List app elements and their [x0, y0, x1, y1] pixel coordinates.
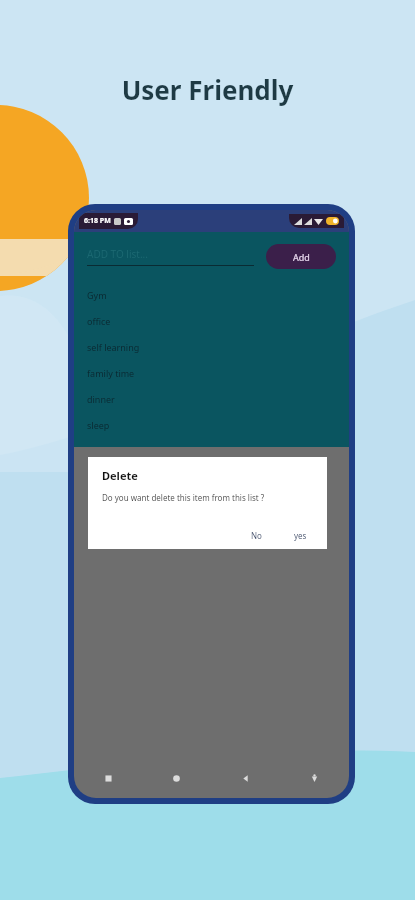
staticText: sleep [87, 419, 110, 431]
staticText: Add [293, 251, 310, 263]
staticText: User Friendly [0, 72, 415, 107]
button[interactable]: ADD TO list... [87, 247, 254, 266]
button[interactable]: family time [74, 360, 349, 386]
button[interactable]: Home [142, 758, 211, 798]
staticText: self learning [87, 341, 140, 353]
button[interactable]: self learning [74, 334, 349, 360]
button[interactable]: Assistant [280, 758, 349, 798]
staticText: Gym [87, 289, 107, 301]
staticText: family time [87, 367, 135, 379]
staticText: Do you want delete this item from this l… [102, 492, 265, 503]
button[interactable]: Add [266, 244, 336, 269]
staticText: dinner [87, 393, 115, 405]
button[interactable]: yes [285, 526, 316, 545]
staticText: No [251, 530, 262, 541]
staticText: ADD TO list... [87, 247, 148, 261]
staticText: Delete [102, 468, 138, 483]
staticText: yes [294, 530, 307, 541]
button[interactable]: Back [211, 758, 280, 798]
staticText: 6:18 PM [84, 216, 111, 226]
button[interactable]: No [242, 526, 271, 545]
button[interactable]: Recents [74, 758, 142, 798]
staticText: office [87, 315, 111, 327]
